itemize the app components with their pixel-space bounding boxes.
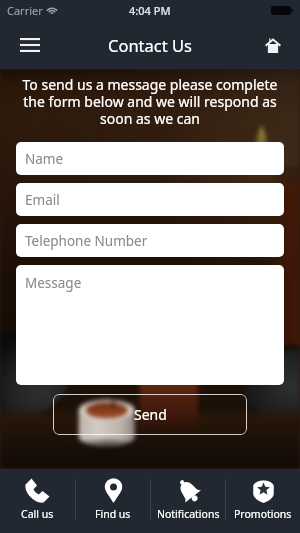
button[interactable]: Home (253, 25, 293, 65)
button[interactable]: Find us (76, 469, 150, 530)
button[interactable]: Notifications (151, 469, 225, 530)
staticText: Telephone Number (25, 232, 148, 250)
staticText: To send us a message please complete the… (14, 75, 286, 128)
staticText: Contact Us (108, 34, 192, 56)
button[interactable]: Call us (0, 469, 75, 530)
button[interactable]: Email (16, 183, 284, 216)
staticText: 4:04 PM (129, 3, 171, 18)
staticText: Find us (95, 507, 131, 521)
staticText: Message (25, 274, 82, 292)
staticText: Send (134, 405, 167, 424)
staticText: Call us (21, 507, 54, 521)
button[interactable]: Name (16, 142, 284, 175)
button[interactable]: Send (53, 394, 247, 435)
button[interactable]: Telephone Number (16, 224, 284, 257)
button[interactable]: Menu (10, 25, 50, 65)
staticText: Notifications (157, 507, 220, 521)
button[interactable]: Message (16, 265, 284, 385)
staticText: Name (25, 150, 64, 168)
staticText: Promotions (234, 507, 292, 521)
button[interactable]: Promotions (226, 469, 300, 530)
staticText: Carrier (7, 3, 43, 18)
staticText: Email (25, 191, 60, 209)
